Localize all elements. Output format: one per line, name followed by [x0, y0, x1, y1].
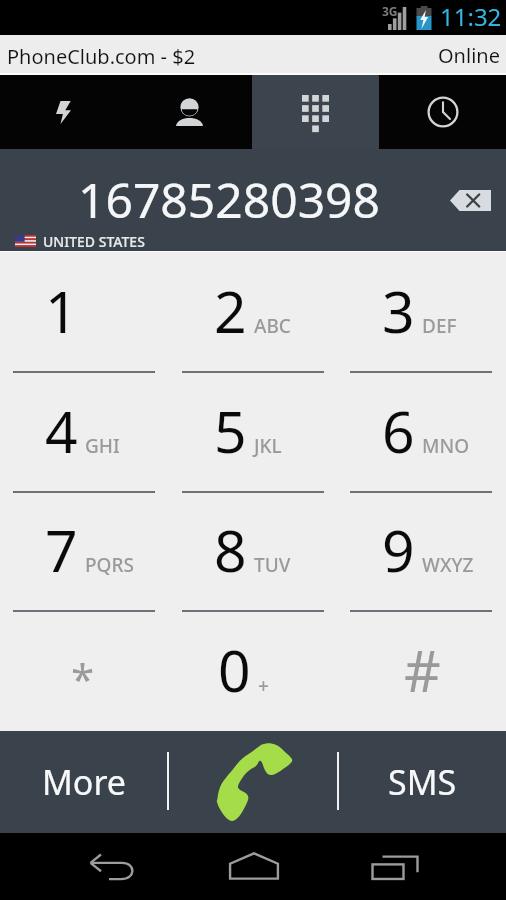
button[interactable]: Home	[183, 833, 324, 900]
staticText: Online	[438, 42, 500, 69]
staticText: DEF	[422, 313, 457, 339]
staticText: MNO	[422, 433, 470, 459]
button[interactable]: Backspace	[447, 180, 493, 220]
button[interactable]: Speed dial	[0, 75, 126, 149]
staticText: #	[404, 631, 441, 709]
button[interactable]: SMS	[338, 731, 506, 833]
staticText: 1	[45, 272, 78, 350]
staticText: 6	[382, 392, 415, 470]
button[interactable]: 4	[0, 372, 169, 492]
staticText: GHI	[85, 433, 120, 459]
staticText: +	[258, 673, 269, 699]
staticText: 3	[382, 272, 415, 350]
staticText: 9	[382, 511, 415, 589]
staticText: SMS	[388, 759, 457, 805]
button[interactable]: More	[0, 731, 168, 833]
staticText: PhoneClub.com - $2	[7, 43, 196, 70]
button[interactable]: 8	[169, 491, 338, 611]
staticText: WXYZ	[422, 552, 474, 578]
staticText: 4	[45, 392, 78, 470]
staticText: 7	[45, 511, 78, 589]
staticText: 11:32	[440, 0, 502, 33]
button[interactable]: 1	[0, 252, 169, 372]
staticText: TUV	[254, 552, 291, 578]
button[interactable]: Contacts	[126, 75, 252, 149]
button[interactable]: *	[0, 611, 169, 731]
staticText: 0	[218, 631, 251, 709]
staticText: *	[71, 650, 95, 707]
button[interactable]: 2	[169, 252, 338, 372]
button[interactable]: 0	[169, 611, 338, 731]
staticText: UNITED STATES	[43, 232, 145, 251]
button[interactable]: 3	[337, 252, 506, 372]
staticText: More	[42, 759, 126, 805]
staticText: 5	[214, 392, 247, 470]
button[interactable]: Call history	[379, 75, 506, 149]
staticText: 3G	[382, 3, 398, 19]
staticText: JKL	[254, 433, 282, 459]
button[interactable]: Call	[169, 731, 337, 833]
button[interactable]: 7	[0, 491, 169, 611]
staticText: ABC	[254, 313, 291, 339]
staticText: 16785280398	[78, 167, 381, 232]
button[interactable]: 9	[337, 491, 506, 611]
button[interactable]: Dialpad	[252, 75, 379, 149]
button[interactable]: 6	[337, 372, 506, 492]
button[interactable]: Recent apps	[324, 833, 465, 900]
button[interactable]: #	[337, 611, 506, 731]
staticText: 2	[214, 272, 247, 350]
staticText: 8	[214, 511, 247, 589]
staticText: PQRS	[85, 552, 134, 578]
button[interactable]: 5	[169, 372, 338, 492]
button[interactable]: Back	[41, 833, 183, 900]
